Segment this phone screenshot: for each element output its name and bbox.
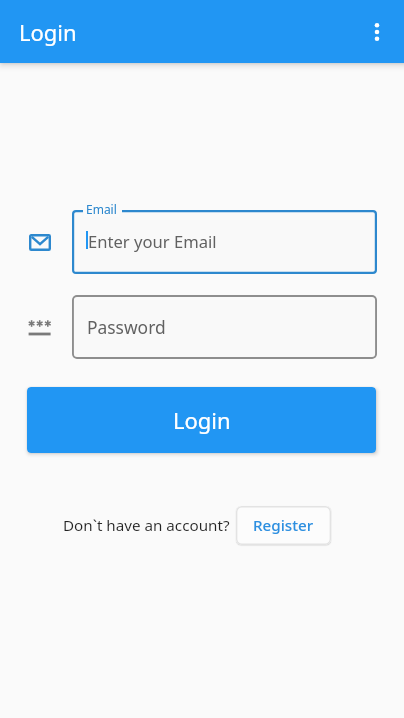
staticText: Enter your Email xyxy=(88,230,217,253)
staticText: Email xyxy=(86,201,117,217)
staticText: Login xyxy=(19,17,77,47)
button[interactable]: Password xyxy=(72,295,377,359)
staticText: Login xyxy=(173,405,231,435)
button[interactable] xyxy=(72,210,377,274)
button[interactable]: Register xyxy=(236,506,331,545)
staticText: Register xyxy=(253,515,314,536)
button[interactable]: More options xyxy=(353,9,399,55)
button[interactable]: Login xyxy=(27,387,376,453)
staticText: Don`t have an account? xyxy=(63,515,230,536)
staticText: Password xyxy=(87,315,166,339)
